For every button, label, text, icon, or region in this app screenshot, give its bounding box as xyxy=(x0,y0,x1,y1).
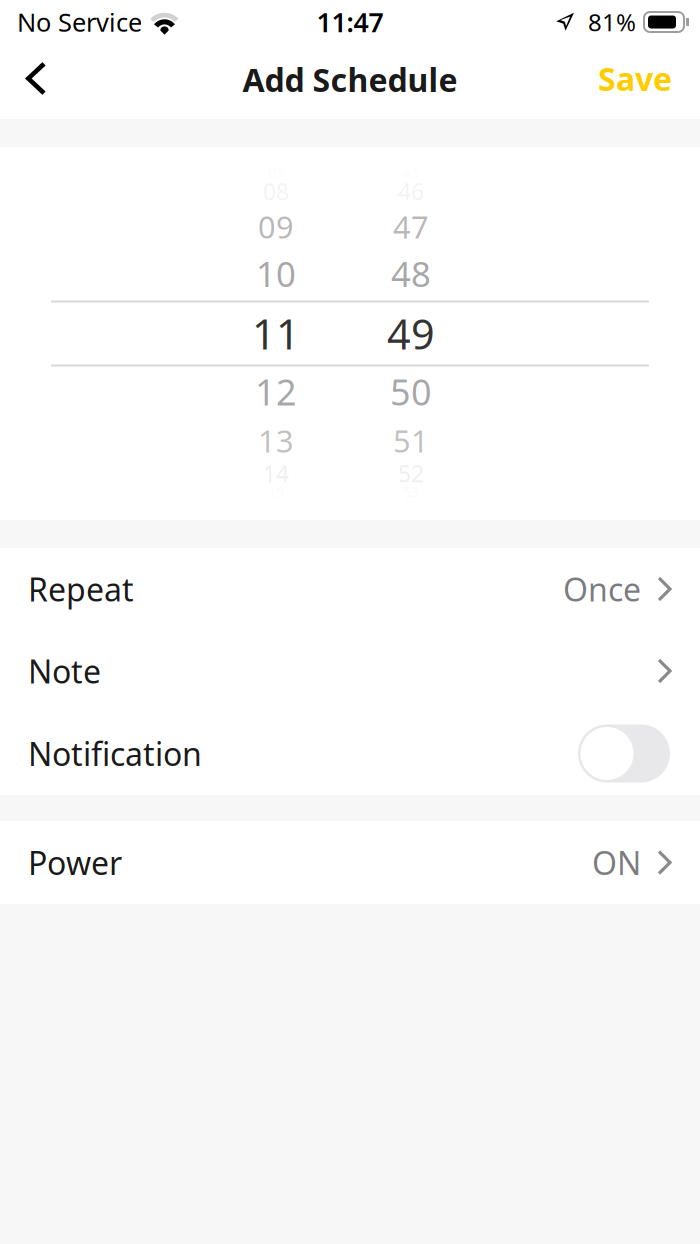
staticText: 11 xyxy=(252,306,300,361)
staticText: Note xyxy=(28,650,101,692)
staticText: 09 xyxy=(258,206,294,247)
button[interactable]: Notification, off xyxy=(578,724,670,782)
staticText: 47 xyxy=(393,206,429,247)
staticText: 12 xyxy=(255,368,297,415)
staticText: 08 xyxy=(263,176,289,206)
staticText: 13 xyxy=(258,420,294,461)
staticText: Repeat xyxy=(28,568,134,610)
button[interactable]: Time, 11:49 xyxy=(0,147,700,520)
staticText: Notification xyxy=(28,732,202,775)
button[interactable]: Save xyxy=(587,44,683,119)
staticText: 50 xyxy=(390,368,432,415)
staticText: Power xyxy=(28,841,122,884)
staticText: ON xyxy=(592,841,641,884)
staticText: Add Schedule xyxy=(242,58,457,101)
staticText: 10 xyxy=(256,250,296,296)
button[interactable]: Note xyxy=(0,630,700,712)
button[interactable]: Repeat xyxy=(0,548,700,630)
staticText: 48 xyxy=(391,250,431,296)
staticText: Save xyxy=(598,57,672,100)
staticText: No Service xyxy=(17,5,142,39)
staticText: 52 xyxy=(398,458,424,488)
staticText: 51 xyxy=(393,420,429,461)
button[interactable]: Power xyxy=(0,821,700,904)
staticText: 49 xyxy=(387,306,435,361)
staticText: 14 xyxy=(263,458,289,488)
staticText: 11:47 xyxy=(316,4,383,40)
button[interactable]: Back xyxy=(8,44,64,119)
staticText: 81% xyxy=(588,6,636,38)
staticText: 46 xyxy=(398,176,424,206)
staticText: Once xyxy=(563,568,641,610)
